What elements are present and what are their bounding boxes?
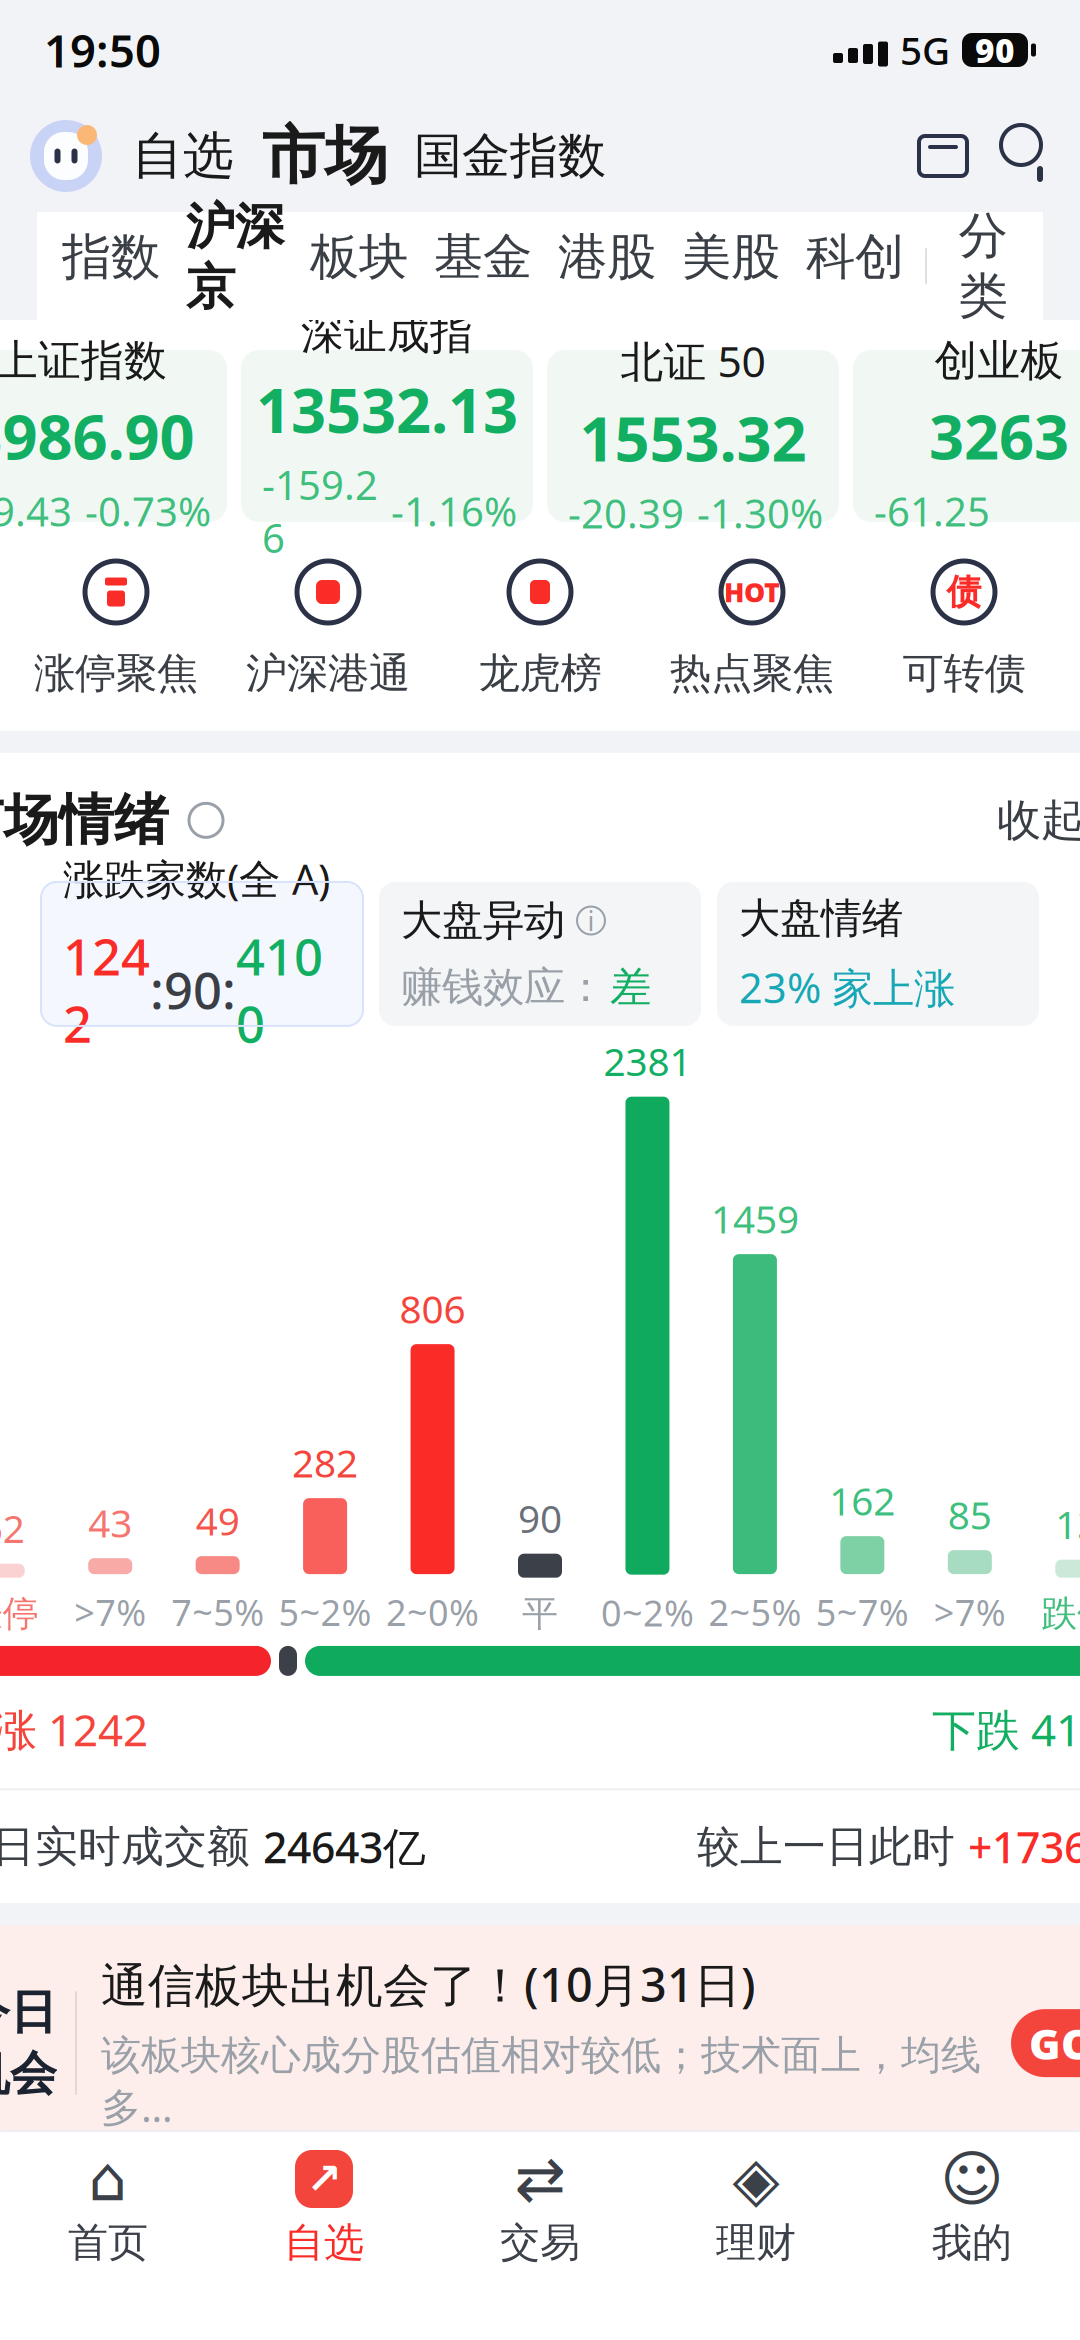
button[interactable]: 账户头像	[28, 118, 104, 194]
staticText: 平	[522, 1592, 558, 1636]
staticText: 龙虎榜	[478, 648, 601, 699]
staticText: >7%	[74, 1588, 146, 1636]
staticText: -0.73%	[85, 484, 211, 537]
button[interactable]: HOT	[646, 552, 858, 699]
staticText: 19:50	[44, 20, 161, 80]
button[interactable]: 刷新	[183, 797, 229, 843]
button[interactable]: ⌂	[0, 2150, 216, 2267]
staticText: 美股	[682, 227, 780, 287]
button[interactable]: 大盘异动	[379, 882, 701, 1026]
staticText: 90	[518, 1492, 562, 1544]
button[interactable]: 债	[858, 552, 1070, 699]
staticText: 24643亿	[263, 1818, 426, 1875]
staticText: -61.25	[874, 484, 990, 537]
staticText: 市场情绪	[0, 787, 169, 854]
staticText: 收起	[997, 793, 1080, 847]
staticText: 沪深京	[186, 196, 284, 318]
staticText: 沪深港通	[246, 648, 410, 699]
button[interactable]: 收起	[997, 793, 1080, 847]
staticText: 通信板块出机会了！(10月31日)	[101, 1953, 756, 2015]
staticText: 4100	[236, 922, 323, 1057]
button[interactable]: 龙虎榜	[434, 552, 646, 699]
staticText: +1736亿	[968, 1818, 1080, 1875]
button[interactable]: 自选	[132, 125, 234, 187]
button[interactable]: 涨停聚焦	[10, 552, 222, 699]
staticText: 北证 50	[620, 332, 765, 389]
staticText: 62	[0, 1502, 25, 1554]
staticText: 今日	[0, 1984, 57, 2041]
staticText: 90	[975, 28, 1015, 72]
staticText: 我的	[932, 2218, 1012, 2267]
staticText: 国金指数	[414, 126, 606, 185]
button[interactable]: 搜索	[990, 125, 1052, 187]
button[interactable]: 北证 50	[547, 350, 839, 522]
button[interactable]: ☺	[864, 2150, 1080, 2267]
staticText: :90:	[150, 956, 236, 1023]
button[interactable]: 港股	[545, 227, 669, 305]
staticText: 2~5%	[708, 1588, 801, 1636]
staticText: 涨停	[0, 1592, 39, 1636]
staticText: 3986.90	[0, 395, 194, 476]
staticText: ◈	[732, 2144, 779, 2214]
staticText: 深证成指	[301, 308, 473, 360]
button[interactable]: 消息	[912, 125, 974, 187]
button[interactable]: 沪深港通	[222, 552, 434, 699]
button[interactable]: 分类	[935, 205, 1031, 327]
staticText: 赚钱效应：	[401, 962, 606, 1013]
staticText: ☺	[940, 2144, 1004, 2214]
staticText: 交易	[500, 2218, 580, 2267]
staticText: 分类	[958, 205, 1007, 327]
button[interactable]: 科创	[793, 227, 917, 305]
button[interactable]: 创业板	[853, 350, 1080, 522]
staticText: 涨停聚焦	[34, 648, 198, 699]
button[interactable]: ↗	[216, 2150, 432, 2267]
button[interactable]: 指数	[49, 227, 173, 305]
staticText: 机会	[0, 2045, 57, 2102]
staticText: -20.39	[568, 486, 684, 540]
staticText: HOT	[724, 574, 780, 610]
button[interactable]: 国金指数	[414, 126, 606, 185]
staticText: ⇄	[514, 2144, 565, 2214]
staticText: 指数	[62, 227, 160, 287]
staticText: 5~7%	[816, 1588, 909, 1636]
staticText: 1242	[63, 922, 150, 1057]
staticText: 806	[399, 1283, 465, 1334]
staticText: 科创	[806, 227, 904, 287]
staticText: 该板块核心成分股估值相对较低；技术面上，均线多…	[101, 2031, 981, 2133]
staticText: 23% 家上涨	[739, 960, 955, 1015]
button[interactable]: 深证成指	[241, 350, 533, 522]
button[interactable]: 基金	[421, 227, 545, 305]
staticText: 5G	[900, 24, 950, 76]
staticText: ⌂	[88, 2144, 127, 2214]
staticText: 13532.13	[256, 368, 518, 450]
staticText: 自选	[132, 125, 234, 187]
staticText: 13	[1055, 1498, 1080, 1550]
staticText: 理财	[716, 2218, 796, 2267]
staticText: 涨跌家数(全 A)	[63, 851, 330, 906]
staticText: 1459	[711, 1193, 799, 1244]
staticText: 下跌 4100	[932, 1700, 1080, 1758]
staticText: 5~2%	[279, 1588, 372, 1636]
staticText: 1553.32	[579, 397, 806, 478]
button[interactable]: 涨跌家数(全 A)	[41, 882, 363, 1026]
button[interactable]: ⇄	[432, 2150, 648, 2267]
staticText: 3263	[929, 395, 1069, 476]
button[interactable]: 沪深京	[173, 196, 297, 336]
button[interactable]: ◈	[648, 2150, 864, 2267]
staticText: 43	[88, 1497, 132, 1548]
staticText: 港股	[558, 227, 656, 287]
button[interactable]: 市场	[262, 117, 388, 194]
button[interactable]: 美股	[669, 227, 793, 305]
staticText: i	[587, 903, 594, 938]
staticText: 上证指数	[0, 334, 167, 387]
button[interactable]: 今日	[0, 1925, 1080, 2161]
button[interactable]: 上证指数	[0, 350, 227, 522]
button[interactable]: 大盘情绪	[717, 882, 1039, 1026]
button[interactable]: 板块	[297, 227, 421, 305]
